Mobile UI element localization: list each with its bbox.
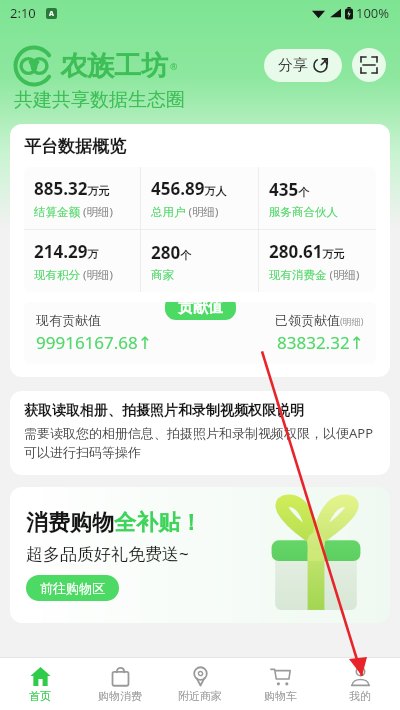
- staticText: 885.32万元: [34, 177, 110, 200]
- staticText: 农族工坊: [60, 49, 168, 83]
- button[interactable]: 消费购物全补贴！: [10, 487, 390, 623]
- button[interactable]: 280个: [141, 230, 258, 292]
- button[interactable]: Scan: [352, 48, 386, 82]
- button[interactable]: 214.29万: [24, 230, 140, 292]
- staticText: 我的: [349, 689, 371, 703]
- staticText: ®: [170, 60, 178, 72]
- staticText: 消费购物全补贴！: [26, 509, 202, 537]
- button[interactable]: 购物车: [240, 658, 320, 710]
- staticText: 214.29万: [34, 240, 99, 263]
- button[interactable]: 附近商家: [160, 658, 240, 710]
- staticText: 现有贡献值: [36, 312, 101, 328]
- staticText: 需要读取您的相册信息、拍摄照片和录制视频权限，以便APP可以进行扫码等操作: [24, 424, 376, 461]
- staticText: 总用户 (明细): [151, 204, 219, 220]
- button[interactable]: 现有贡献值: [24, 302, 376, 364]
- button[interactable]: 首页: [0, 658, 80, 710]
- button[interactable]: 前往购物区: [26, 575, 119, 601]
- staticText: 现有消费金 (明细): [269, 267, 360, 283]
- button[interactable]: 280.61万元: [259, 230, 376, 292]
- staticText: 现有积分 (明细): [34, 267, 113, 283]
- staticText: 首页: [29, 689, 51, 703]
- staticText: 附近商家: [178, 689, 222, 703]
- button[interactable]: 885.32万元: [24, 167, 140, 229]
- button[interactable]: 购物消费: [80, 658, 160, 710]
- staticText: 超多品质好礼免费送~: [26, 542, 189, 565]
- staticText: 服务商合伙人: [269, 205, 338, 219]
- staticText: 99916167.68↑: [36, 331, 153, 354]
- staticText: 456.89万人: [151, 177, 227, 200]
- button[interactable]: 435个: [259, 167, 376, 229]
- button[interactable]: 分享: [264, 49, 342, 82]
- staticText: 280个: [151, 241, 192, 264]
- staticText: 平台数据概览: [24, 136, 126, 157]
- staticText: 获取读取相册、拍摄照片和录制视频权限说明: [24, 402, 304, 420]
- staticText: 购物消费: [98, 689, 142, 703]
- staticText: 2:10: [10, 4, 36, 22]
- staticText: A: [49, 9, 54, 19]
- staticText: 共建共享数据生态圈: [14, 88, 185, 112]
- staticText: 280.61万元: [269, 240, 345, 263]
- staticText: 100%: [356, 4, 390, 22]
- staticText: 前往购物区: [40, 580, 105, 596]
- staticText: 435个: [269, 178, 310, 201]
- staticText: 结算金额 (明细): [34, 204, 113, 220]
- staticText: 分享: [278, 56, 308, 75]
- staticText: 购物车: [264, 689, 297, 703]
- button[interactable]: 456.89万人: [141, 167, 258, 229]
- button[interactable]: 我的: [320, 658, 400, 710]
- staticText: 83832.32↑: [277, 331, 364, 354]
- staticText: 贡献值: [178, 302, 223, 317]
- staticText: 已领贡献值(明细): [275, 312, 364, 328]
- staticText: 商家: [151, 268, 174, 282]
- button[interactable]: 获取读取相册、拍摄照片和录制视频权限说明: [10, 391, 390, 475]
